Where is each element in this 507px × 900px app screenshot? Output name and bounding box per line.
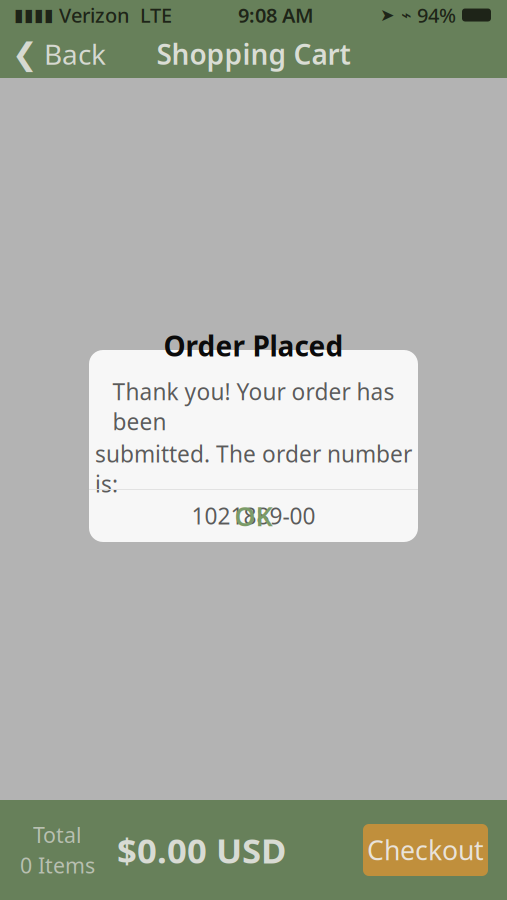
staticText: Order Placed [163, 327, 343, 364]
staticText: 94% [417, 2, 456, 28]
staticText: Checkout [367, 832, 484, 868]
button[interactable]: Checkout [363, 824, 488, 876]
staticText: ❮ [12, 37, 38, 71]
staticText: Total [33, 821, 82, 849]
staticText: submitted. The order number is: [95, 438, 412, 499]
staticText: ▮▮▮▮ [14, 5, 54, 25]
staticText: $0.00 USD [117, 827, 286, 873]
staticText: 9:08 AM [238, 2, 314, 28]
staticText: 0 Items [20, 851, 95, 879]
button[interactable]: ❮ [0, 27, 118, 81]
staticText: ⌁ [395, 5, 417, 25]
staticText: LTE [130, 2, 172, 28]
staticText: Shopping Cart [156, 35, 350, 73]
staticText: ➤ [380, 5, 395, 25]
staticText: OK [234, 498, 272, 534]
staticText: Verizon [54, 2, 130, 28]
staticText: Thank you! Your order has been [112, 376, 394, 436]
staticText: Back [44, 35, 106, 73]
button[interactable]: OK [89, 490, 418, 542]
staticText: 1021889-00 [191, 501, 315, 531]
